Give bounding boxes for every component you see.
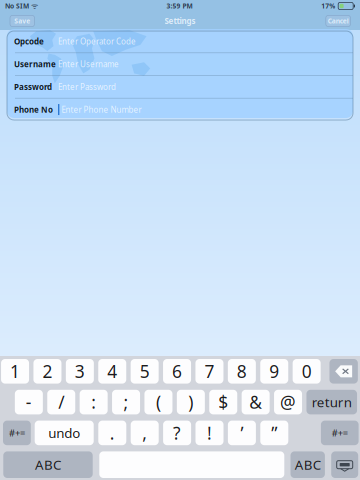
staticText: Enter Operator Code: [58, 36, 136, 47]
button[interactable]: 5: [131, 359, 159, 384]
button[interactable]: .: [98, 421, 126, 445]
staticText: (: [156, 391, 161, 414]
button[interactable]: Delete: [329, 359, 358, 384]
staticText: ABC: [295, 456, 321, 473]
staticText: Username: [14, 59, 56, 69]
staticText: 0: [302, 360, 312, 383]
staticText: return: [312, 393, 352, 411]
button[interactable]: 6: [163, 359, 191, 384]
staticText: ”: [271, 421, 277, 444]
staticText: 9: [269, 360, 279, 383]
button[interactable]: ’: [228, 421, 256, 445]
button[interactable]: 1: [1, 359, 29, 384]
button[interactable]: ABC: [290, 451, 325, 478]
staticText: Opcode: [14, 36, 44, 47]
staticText: Enter Phone Number: [61, 104, 141, 115]
staticText: Phone No: [14, 104, 53, 115]
staticText: ’: [240, 421, 243, 444]
staticText: 7: [204, 360, 214, 383]
staticText: ,: [142, 421, 147, 444]
button[interactable]: ,: [131, 421, 159, 445]
button[interactable]: @: [274, 390, 302, 414]
staticText: ): [188, 391, 193, 414]
button[interactable]: 9: [260, 359, 288, 384]
staticText: ;: [123, 391, 128, 414]
staticText: $: [218, 391, 228, 414]
staticText: @: [280, 391, 296, 414]
staticText: Settings: [164, 16, 195, 26]
staticText: Cancel: [328, 17, 349, 25]
staticText: Enter Password: [58, 81, 116, 92]
staticText: /: [58, 391, 64, 414]
button[interactable]: undo: [35, 421, 94, 445]
staticText: 1: [10, 360, 20, 383]
staticText: 3:59 PM: [167, 2, 193, 10]
button[interactable]: &: [242, 390, 270, 414]
staticText: Enter Username: [58, 59, 119, 69]
button[interactable]: ;: [112, 390, 140, 414]
button[interactable]: (: [144, 390, 172, 414]
staticText: Password: [14, 81, 52, 92]
button[interactable]: 3: [66, 359, 94, 384]
button[interactable]: Cancel: [326, 15, 350, 27]
staticText: undo: [48, 424, 80, 442]
staticText: ?: [173, 421, 181, 444]
button[interactable]: 0: [293, 359, 321, 384]
button[interactable]: ): [177, 390, 205, 414]
staticText: Save: [14, 17, 30, 25]
button[interactable]: 7: [195, 359, 223, 384]
button[interactable]: :: [80, 390, 108, 414]
button[interactable]: /: [47, 390, 75, 414]
button[interactable]: ABC: [3, 451, 93, 478]
staticText: ᯤ: [29, 1, 38, 11]
staticText: !: [207, 421, 212, 444]
staticText: :: [91, 391, 96, 414]
button[interactable]: 8: [228, 359, 256, 384]
staticText: No SIM: [5, 2, 29, 10]
staticText: #+=: [9, 427, 25, 439]
button[interactable]: [99, 451, 284, 478]
staticText: 5: [140, 360, 150, 383]
button[interactable]: return: [306, 390, 357, 414]
button[interactable]: 4: [98, 359, 126, 384]
button[interactable]: #+=: [3, 421, 31, 445]
staticText: #+=: [332, 427, 348, 439]
button[interactable]: 2: [33, 359, 61, 384]
button[interactable]: $: [209, 390, 237, 414]
staticText: 3: [75, 360, 85, 383]
staticText: ABC: [35, 456, 61, 473]
button[interactable]: -: [15, 390, 43, 414]
staticText: 8: [237, 360, 247, 383]
button[interactable]: #+=: [321, 421, 359, 445]
button[interactable]: ”: [260, 421, 288, 445]
button[interactable]: Save: [10, 15, 34, 27]
button[interactable]: Dismiss keyboard: [331, 451, 358, 478]
staticText: 17%: [321, 2, 335, 10]
staticText: 4: [107, 360, 117, 383]
staticText: &: [249, 391, 262, 414]
staticText: .: [110, 421, 115, 444]
staticText: 2: [42, 360, 52, 383]
button[interactable]: !: [195, 421, 223, 445]
staticText: 6: [172, 360, 182, 383]
button[interactable]: ?: [163, 421, 191, 445]
staticText: -: [26, 391, 32, 414]
